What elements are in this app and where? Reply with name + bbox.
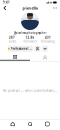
button[interactable]: Professional dashboard — [8, 46, 33, 52]
staticText: 287 — [9, 36, 15, 39]
staticText: @pixelmophotographer — [13, 31, 46, 35]
button[interactable]: 287 — [3, 36, 21, 43]
staticText: Professional dashboard — [11, 47, 33, 50]
button[interactable]: Discover people — [34, 46, 40, 52]
staticText: following — [41, 40, 55, 43]
button[interactable]: Home — [8, 120, 17, 128]
button[interactable]: 12.8k — [21, 36, 39, 43]
button[interactable]: More — [42, 46, 48, 52]
button[interactable]: Tagged posts — [30, 54, 60, 61]
button[interactable]: Posts grid — [0, 54, 30, 61]
staticText: 9:41 — [3, 1, 10, 4]
button[interactable]: Reels — [43, 120, 52, 128]
staticText: No posts yet — when pixnella shares, you… — [3, 89, 57, 92]
staticText: 12.8k — [25, 36, 34, 39]
button[interactable]: More options — [52, 5, 57, 11]
button[interactable]: 431 — [39, 36, 57, 43]
staticText: posts — [8, 40, 15, 43]
button[interactable]: Search — [25, 120, 34, 128]
staticText: pixnella — [22, 5, 37, 11]
staticText: followers — [23, 40, 36, 43]
staticText: 431 — [45, 36, 51, 39]
button[interactable]: Back — [2, 5, 7, 11]
